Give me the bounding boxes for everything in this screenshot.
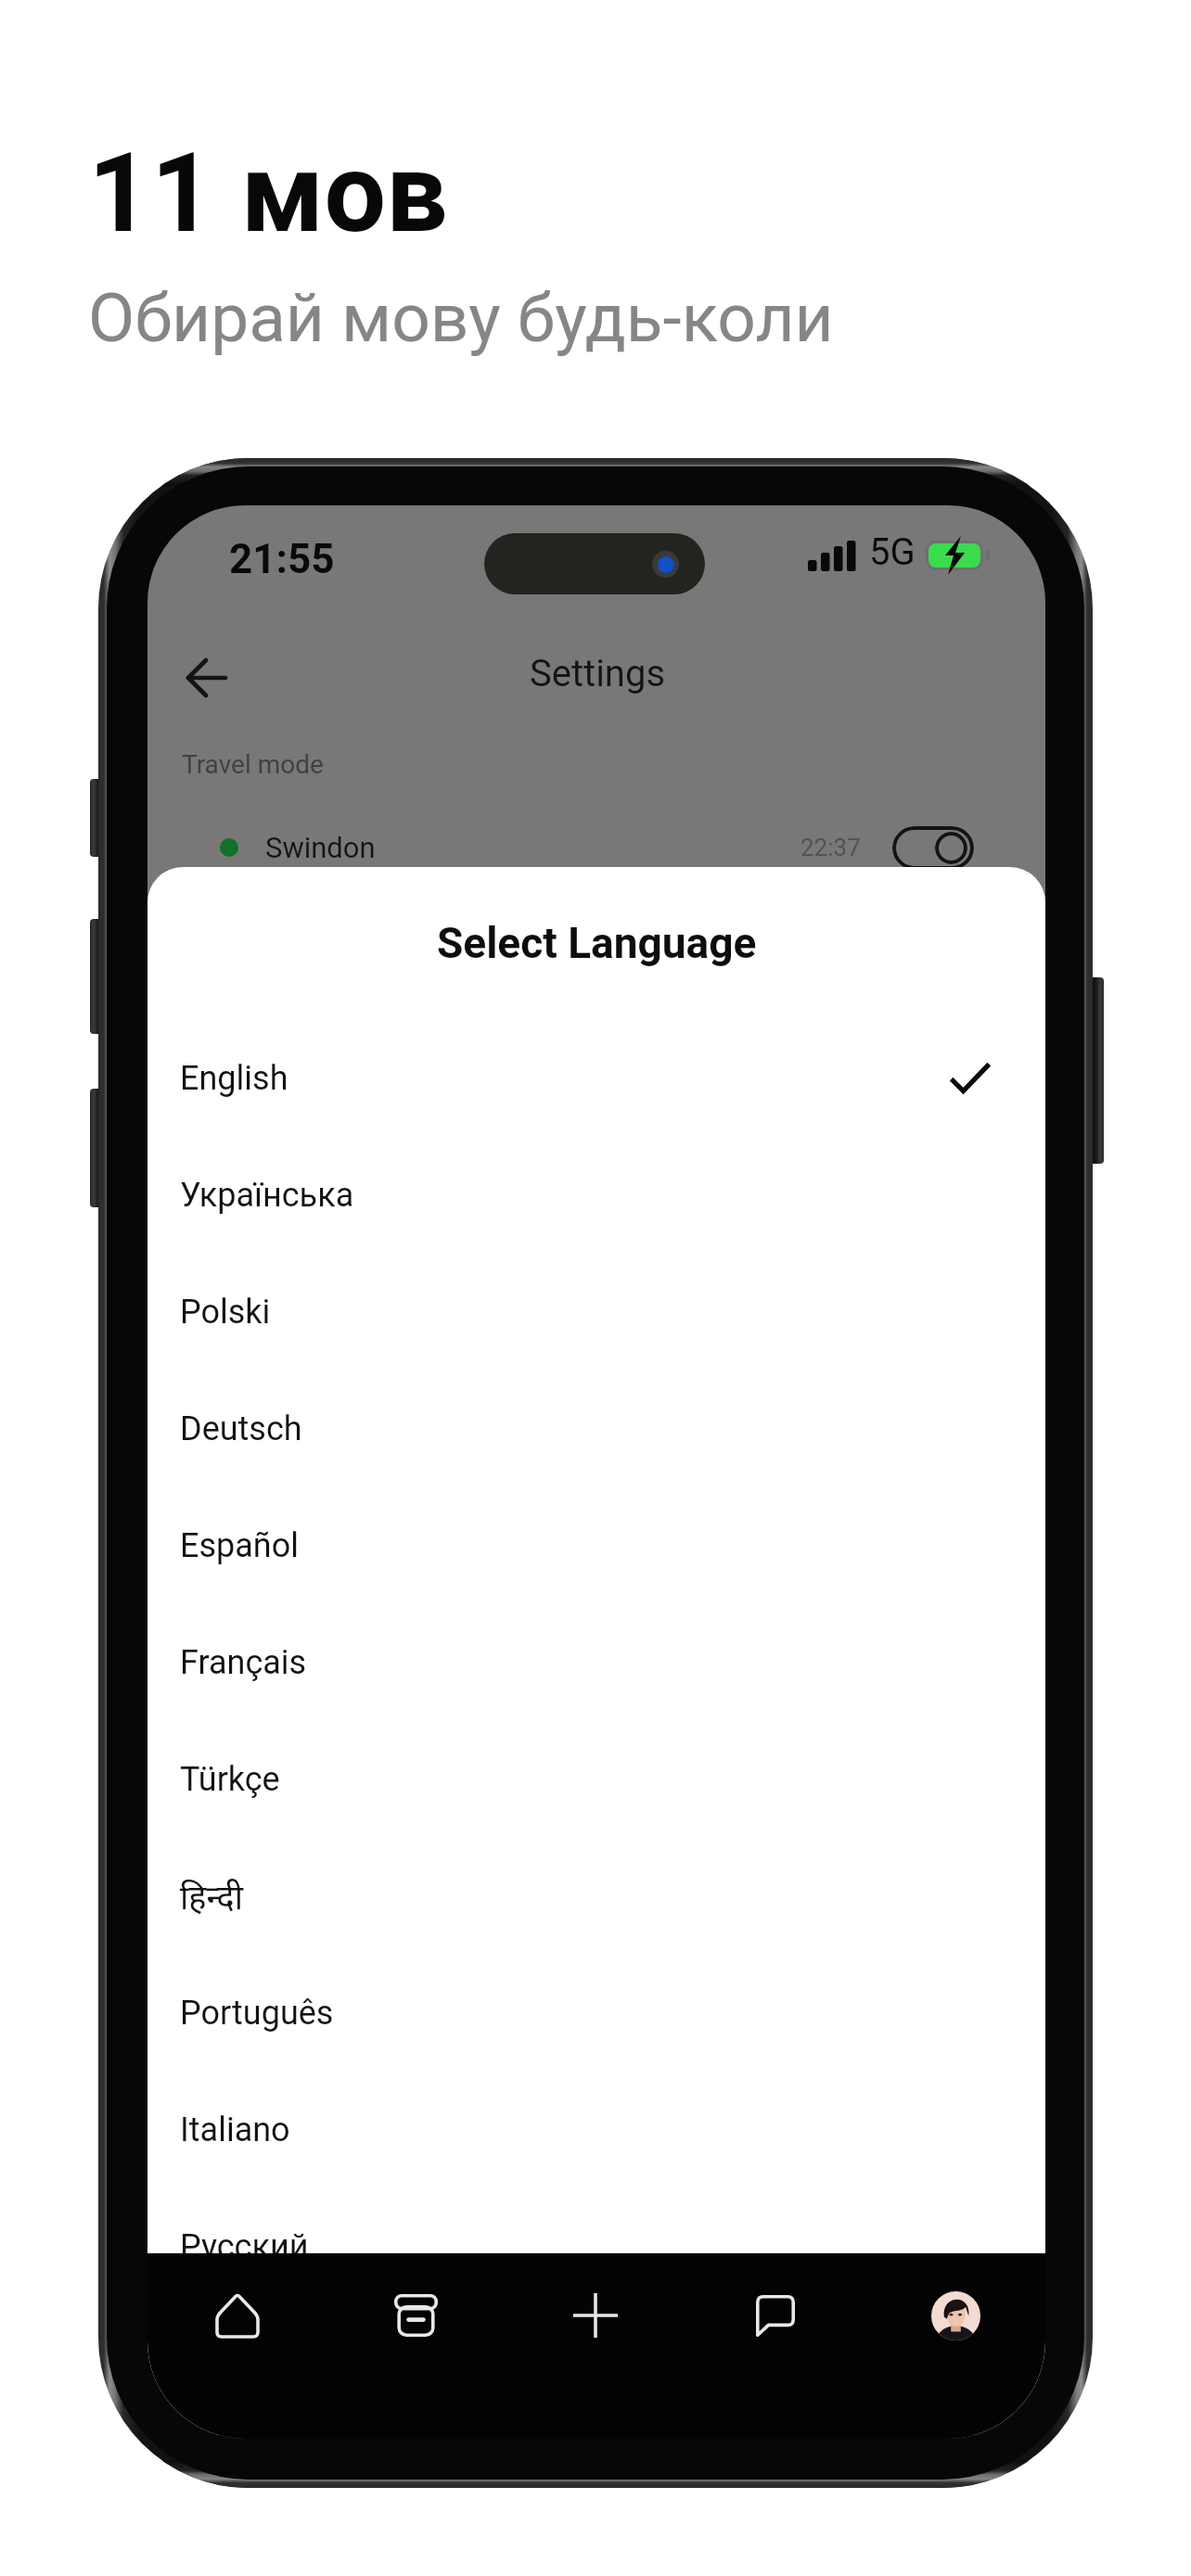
button[interactable]: Українська [147,1137,1045,1254]
staticText: Español [180,1526,300,1565]
staticText: 5G [869,530,916,574]
staticText: Settings [530,652,666,695]
staticText: Polski [180,1293,271,1332]
button[interactable]: Türkçe [147,1721,1045,1838]
button[interactable]: Polski [147,1254,1045,1371]
staticText: Українська [180,1176,354,1215]
button[interactable]: English [147,1020,1045,1137]
button[interactable]: Português [147,1955,1045,2072]
button[interactable]: Deutsch [147,1371,1045,1487]
button[interactable]: Русский [147,2188,1045,2305]
staticText: Русский [180,2227,309,2266]
button[interactable]: Toggle travel mode [892,826,974,870]
staticText: Português [180,1994,334,2033]
staticText: Türkçe [180,1760,280,1799]
button[interactable]: Home [147,2255,327,2376]
button[interactable]: Swindon [147,805,1045,890]
staticText: English [180,1059,288,1098]
staticText: 11 мов [88,130,448,258]
button[interactable]: हिन्दी [147,1838,1045,1955]
button[interactable]: Français [147,1604,1045,1721]
staticText: Français [180,1643,307,1682]
button[interactable]: Create [506,2255,685,2376]
staticText: 22:37 [800,834,861,861]
button[interactable]: Español [147,1487,1045,1604]
button[interactable]: Messages [685,2255,865,2376]
staticText: Travel mode [182,749,324,780]
staticText: 21:55 [229,535,335,583]
staticText: Italiano [180,2111,290,2149]
staticText: Swindon [265,831,376,864]
staticText: Deutsch [180,1409,302,1448]
button[interactable]: Archive [327,2255,506,2376]
staticText: Select Language [437,918,757,968]
staticText: Обирай мову будь-коли [88,278,834,358]
button[interactable]: Profile [865,2255,1045,2376]
button[interactable]: Italiano [147,2072,1045,2188]
staticText: हिन्दी [180,1874,244,1919]
button[interactable]: Back [180,651,234,705]
